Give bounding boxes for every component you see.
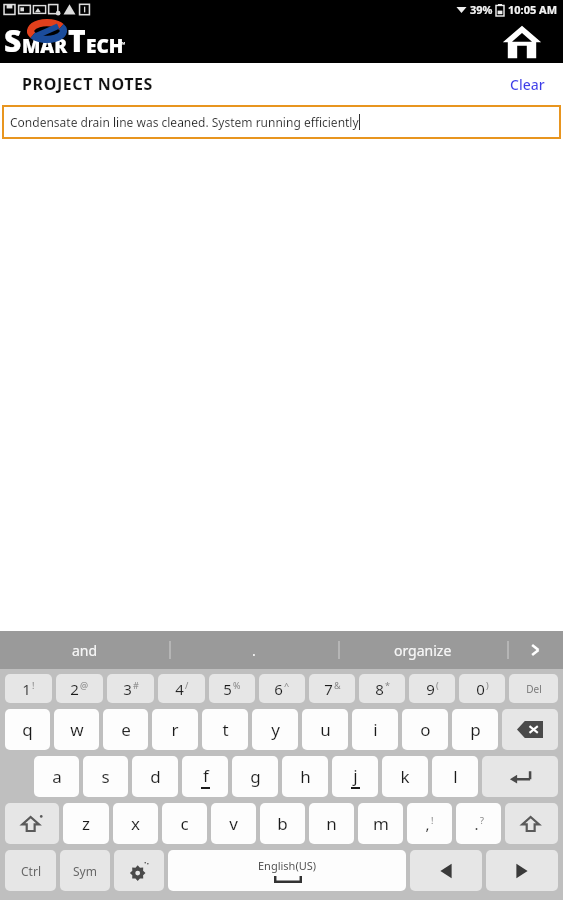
button[interactable]: o bbox=[402, 709, 448, 750]
button[interactable]: 7 bbox=[309, 674, 355, 703]
staticText: T bbox=[68, 20, 86, 61]
button[interactable]: Backspace bbox=[502, 709, 558, 750]
button[interactable]: Keyboard settings bbox=[114, 850, 164, 891]
button[interactable]: 3 bbox=[107, 674, 154, 703]
button[interactable]: a bbox=[34, 756, 79, 797]
staticText: g bbox=[250, 765, 261, 788]
button[interactable]: l bbox=[432, 756, 478, 797]
button[interactable]: g bbox=[232, 756, 278, 797]
staticText: ECH bbox=[86, 33, 124, 59]
button[interactable]: u bbox=[302, 709, 348, 750]
staticText: a bbox=[52, 765, 62, 788]
staticText: 8 bbox=[375, 679, 384, 699]
button[interactable]: 9 bbox=[409, 674, 455, 703]
staticText: & bbox=[334, 679, 341, 691]
staticText: . bbox=[474, 814, 479, 834]
staticText: . bbox=[252, 641, 256, 660]
staticText: Ctrl bbox=[21, 863, 41, 879]
staticText: c bbox=[180, 812, 189, 835]
button[interactable]: b bbox=[260, 803, 305, 844]
button[interactable]: 8 bbox=[359, 674, 405, 703]
button[interactable]: Clear bbox=[502, 69, 553, 100]
button[interactable]: q bbox=[5, 709, 50, 750]
button[interactable]: j bbox=[332, 756, 378, 797]
button[interactable]: c bbox=[162, 803, 207, 844]
button[interactable]: . bbox=[456, 803, 501, 844]
staticText: Sym bbox=[73, 863, 97, 879]
staticText: ! bbox=[32, 679, 35, 691]
staticText: % bbox=[233, 679, 241, 691]
staticText: @ bbox=[80, 679, 89, 691]
button[interactable]: 0 bbox=[459, 674, 505, 703]
staticText: s bbox=[101, 765, 110, 788]
button[interactable]: k bbox=[382, 756, 428, 797]
staticText: organize bbox=[394, 641, 452, 660]
staticText: English(US) bbox=[258, 858, 317, 873]
button[interactable]: f bbox=[182, 756, 228, 797]
staticText: ) bbox=[486, 679, 489, 691]
button[interactable]: Ctrl bbox=[5, 850, 56, 891]
staticText: l bbox=[453, 765, 458, 788]
button[interactable]: Condensate drain line was cleaned. Syste… bbox=[2, 105, 561, 139]
staticText: and bbox=[72, 641, 98, 660]
button[interactable]: i bbox=[352, 709, 398, 750]
button[interactable]: 6 bbox=[259, 674, 305, 703]
button[interactable]: y bbox=[252, 709, 298, 750]
staticText: ! bbox=[431, 814, 434, 826]
staticText: 39% bbox=[470, 2, 493, 17]
button[interactable]: t bbox=[202, 709, 248, 750]
staticText: p bbox=[470, 718, 481, 741]
staticText: 2 bbox=[70, 679, 79, 699]
staticText: 10:05 AM bbox=[508, 2, 558, 17]
staticText: f bbox=[203, 764, 209, 787]
staticText: ( bbox=[436, 679, 439, 691]
button[interactable]: d bbox=[132, 756, 178, 797]
staticText: 5 bbox=[223, 679, 232, 699]
staticText: MAR bbox=[22, 33, 68, 59]
button[interactable]: x bbox=[113, 803, 158, 844]
button[interactable]: v bbox=[211, 803, 256, 844]
staticText: ? bbox=[480, 814, 484, 826]
button[interactable]: English(US) bbox=[168, 850, 406, 891]
button[interactable]: Home bbox=[499, 18, 545, 63]
button[interactable]: Move cursor right bbox=[486, 850, 558, 891]
button[interactable]: z bbox=[63, 803, 109, 844]
staticText: w bbox=[70, 718, 84, 741]
button[interactable]: Move cursor left bbox=[410, 850, 482, 891]
staticText: n bbox=[326, 812, 337, 835]
staticText: 1 bbox=[22, 679, 31, 699]
button[interactable]: 4 bbox=[158, 674, 205, 703]
staticText: # bbox=[133, 679, 139, 691]
staticText: v bbox=[229, 812, 238, 835]
button[interactable]: Enter bbox=[482, 756, 558, 797]
button[interactable]: Shift bbox=[505, 803, 558, 844]
button[interactable]: , bbox=[407, 803, 452, 844]
button[interactable]: More suggestions bbox=[507, 631, 563, 669]
button[interactable]: h bbox=[282, 756, 328, 797]
staticText: 9 bbox=[426, 679, 435, 699]
staticText: y bbox=[271, 718, 280, 741]
button[interactable]: w bbox=[54, 709, 99, 750]
button[interactable]: m bbox=[358, 803, 403, 844]
button[interactable]: Del bbox=[509, 674, 558, 703]
button[interactable]: organize bbox=[338, 631, 507, 669]
button[interactable]: r bbox=[152, 709, 198, 750]
staticText: / bbox=[185, 679, 189, 691]
button[interactable]: Shift bbox=[5, 803, 59, 844]
button[interactable]: e bbox=[103, 709, 148, 750]
button[interactable]: 5 bbox=[209, 674, 255, 703]
button[interactable]: s bbox=[83, 756, 128, 797]
staticText: b bbox=[277, 812, 288, 835]
staticText: ™ bbox=[120, 40, 126, 50]
button[interactable]: Sym bbox=[60, 850, 110, 891]
button[interactable]: p bbox=[452, 709, 498, 750]
staticText: 4 bbox=[175, 679, 184, 699]
staticText: u bbox=[320, 718, 331, 741]
button[interactable]: 1 bbox=[5, 674, 52, 703]
staticText: j bbox=[353, 764, 358, 787]
button[interactable]: n bbox=[309, 803, 354, 844]
button[interactable]: and bbox=[0, 631, 169, 669]
staticText: 6 bbox=[274, 679, 283, 699]
button[interactable]: 2 bbox=[56, 674, 103, 703]
